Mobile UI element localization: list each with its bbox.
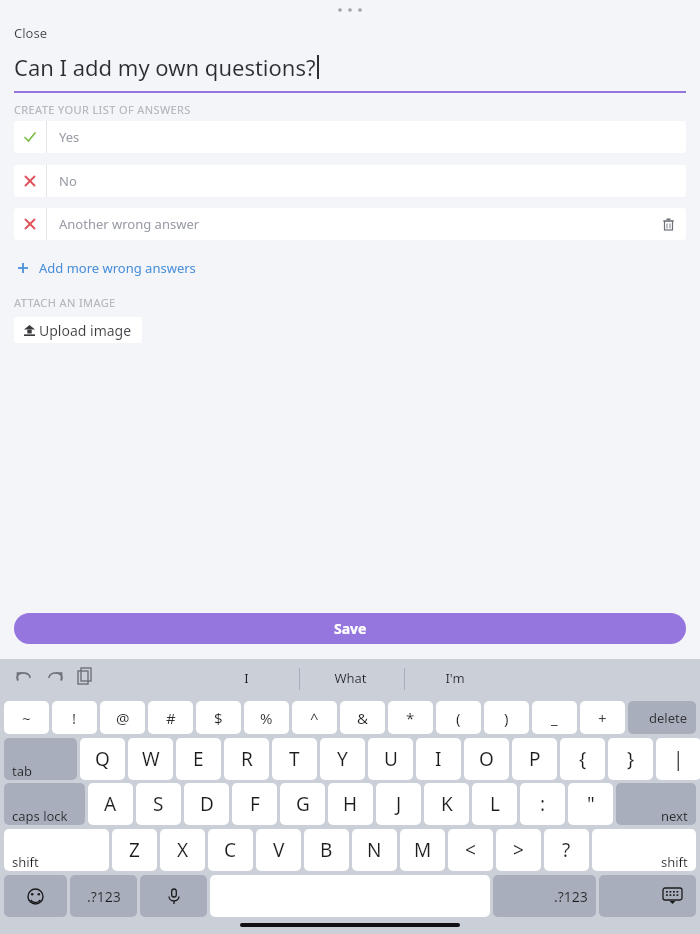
staticText: K [441, 791, 453, 817]
button[interactable]: Z [112, 829, 157, 871]
button[interactable]: ? [544, 829, 589, 871]
button[interactable]: ~ [4, 701, 49, 734]
staticText: $ [214, 708, 223, 728]
button[interactable]: Delete answer [650, 208, 686, 240]
button[interactable]: ) [484, 701, 529, 734]
button[interactable]: } [608, 738, 653, 780]
staticText: E [193, 746, 204, 772]
button[interactable]: L [472, 783, 517, 825]
staticText: .?123 [554, 887, 588, 906]
button[interactable]: next [616, 783, 696, 825]
staticText: ? [562, 837, 571, 863]
staticText: Q [95, 746, 110, 772]
button[interactable]: % [244, 701, 289, 734]
button[interactable]: + [580, 701, 625, 734]
button[interactable]: T [272, 738, 317, 780]
button[interactable]: Voice input [140, 875, 207, 917]
staticText: shift [661, 853, 688, 871]
button[interactable]: Undo [14, 668, 34, 688]
button[interactable]: Another wrong answer [14, 208, 686, 240]
button[interactable]: Can I add my own questions? [14, 52, 686, 92]
button[interactable]: < [448, 829, 493, 871]
button[interactable]: Clipboard [76, 666, 96, 686]
button[interactable]: V [256, 829, 301, 871]
button[interactable]: shift [592, 829, 696, 871]
button[interactable]: K [424, 783, 469, 825]
button[interactable]: O [464, 738, 509, 780]
button[interactable]: { [560, 738, 605, 780]
button[interactable]: * [388, 701, 433, 734]
button[interactable]: Upload image [24, 317, 132, 343]
button[interactable]: X [160, 829, 205, 871]
staticText: tab [12, 762, 32, 780]
staticText: _ [551, 708, 558, 728]
staticText: { [579, 746, 587, 772]
button[interactable]: M [400, 829, 445, 871]
button[interactable]: J [376, 783, 421, 825]
staticText: R [241, 746, 253, 772]
button[interactable]: ^ [292, 701, 337, 734]
button[interactable]: .?123 [70, 875, 137, 917]
button[interactable]: G [280, 783, 325, 825]
button[interactable]: Save [14, 613, 686, 644]
button[interactable]: H [328, 783, 373, 825]
button[interactable]: A [88, 783, 133, 825]
staticText: @ [116, 708, 130, 728]
button[interactable]: delete [628, 701, 696, 734]
button[interactable]: | [656, 738, 700, 780]
button[interactable]: ( [436, 701, 481, 734]
staticText: No [59, 172, 686, 190]
button[interactable]: C [208, 829, 253, 871]
button[interactable]: Yes [14, 121, 686, 153]
staticText: next [661, 807, 688, 825]
button[interactable]: B [304, 829, 349, 871]
button[interactable]: @ [100, 701, 145, 734]
staticText: What [334, 669, 367, 687]
button[interactable]: S [136, 783, 181, 825]
staticText: Yes [59, 128, 686, 146]
button[interactable]: U [368, 738, 413, 780]
button[interactable]: Hide keyboard [599, 875, 696, 917]
button[interactable]: Q [80, 738, 125, 780]
button[interactable]: Y [320, 738, 365, 780]
button[interactable]: " [568, 783, 613, 825]
button[interactable]: tab [4, 738, 77, 780]
button[interactable]: _ [532, 701, 577, 734]
button[interactable]: More options [336, 3, 364, 17]
staticText: Save [334, 619, 367, 638]
staticText: I'm [445, 669, 465, 687]
button[interactable]: F [232, 783, 277, 825]
button[interactable]: shift [4, 829, 109, 871]
staticText: O [479, 746, 494, 772]
button[interactable]: caps lock [4, 783, 85, 825]
button[interactable]: D [184, 783, 229, 825]
button[interactable]: I'm [410, 664, 500, 692]
button[interactable]: Redo [45, 668, 65, 688]
button[interactable]: > [496, 829, 541, 871]
button[interactable]: Add more wrong answers [16, 257, 196, 279]
staticText: " [587, 791, 595, 817]
button[interactable]: # [148, 701, 193, 734]
staticText: P [529, 746, 541, 772]
button[interactable]: Close [14, 24, 47, 42]
button[interactable]: I [416, 738, 461, 780]
button[interactable]: No [14, 165, 686, 197]
button[interactable]: R [224, 738, 269, 780]
button[interactable]: N [352, 829, 397, 871]
button[interactable]: P [512, 738, 557, 780]
staticText: N [367, 837, 382, 863]
staticText: H [343, 791, 358, 817]
button[interactable]: : [520, 783, 565, 825]
button[interactable]: What [305, 664, 395, 692]
staticText: ATTACH AN IMAGE [14, 295, 116, 310]
button[interactable]: W [128, 738, 173, 780]
button[interactable]: $ [196, 701, 241, 734]
staticText: Can I add my own questions? [14, 52, 316, 82]
button[interactable]: ! [52, 701, 97, 734]
button[interactable]: & [340, 701, 385, 734]
button[interactable]: E [176, 738, 221, 780]
button[interactable]: I [201, 664, 291, 692]
button[interactable]: .?123 [493, 875, 596, 917]
button[interactable]: Emoji [4, 875, 67, 917]
